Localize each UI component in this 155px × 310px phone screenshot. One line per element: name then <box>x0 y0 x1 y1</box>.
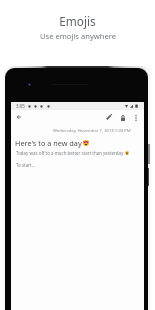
staticText: To start... <box>16 162 36 168</box>
staticText: Here's to a new day <box>15 138 82 148</box>
staticText: Wednesday, November 7, 2018 1:03 PM <box>53 128 131 134</box>
button[interactable]: More options <box>131 113 141 123</box>
button[interactable]: Edit <box>104 112 114 122</box>
button[interactable]: Back <box>14 112 24 122</box>
staticText: Today was off to a much better start tha… <box>16 150 124 156</box>
staticText: Emojis <box>59 13 96 29</box>
staticText: Use emojis anywhere <box>40 31 116 41</box>
button[interactable]: Lock <box>118 113 128 123</box>
staticText: 3:05 <box>16 103 25 109</box>
